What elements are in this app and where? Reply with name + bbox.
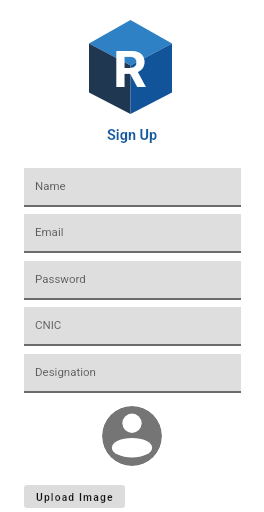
staticText: CNIC [35,318,62,331]
staticText: Password [35,272,86,285]
staticText: Sign Up [107,127,158,144]
button[interactable]: Name [24,168,241,207]
staticText: R [113,41,148,100]
button[interactable]: Password [24,261,241,300]
button[interactable]: CNIC [24,307,241,346]
staticText: Name [35,179,66,192]
staticText: Email [35,225,64,238]
button[interactable]: Designation [24,354,241,393]
staticText: Designation [35,365,96,378]
staticText: Upload Image [36,491,114,503]
button[interactable]: Profile picture [102,406,162,466]
button[interactable]: Upload Image [24,485,125,508]
button[interactable]: Email [24,214,241,253]
